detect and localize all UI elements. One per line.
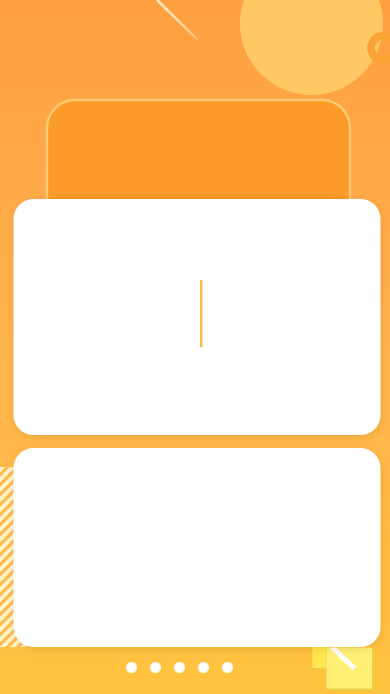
button[interactable] [13, 448, 380, 647]
button[interactable] [13, 199, 380, 435]
